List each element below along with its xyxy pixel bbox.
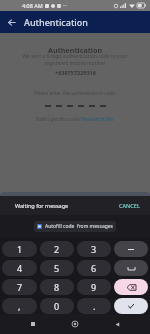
staticText: Please enter the authentication code. [34,90,117,96]
button[interactable]: 8 [40,279,74,295]
staticText: 4 [17,262,23,274]
staticText: 8 [54,281,60,293]
button[interactable]: Space [114,260,148,276]
staticText: 5 [54,262,60,274]
button[interactable]: Recents [26,317,40,331]
button[interactable]: 6 [77,260,111,276]
button[interactable]: 7 [2,279,37,295]
staticText: Authentication [48,45,103,55]
staticText: +639757229316 [55,69,96,76]
staticText: 6 [91,262,97,274]
button[interactable]: 1 [2,241,37,257]
staticText: ··· [63,2,68,9]
staticText: We sent a 6-digit authentication code to… [22,53,128,67]
staticText: Authentication [24,16,88,28]
button[interactable]: 0 [40,298,74,314]
button[interactable]: 9 [77,279,111,295]
staticText: 1 [17,243,23,255]
button[interactable]: Resend in 59s [82,116,114,122]
staticText: 0 [54,300,60,312]
button[interactable]: . [77,298,111,314]
staticText: , [18,300,21,312]
button[interactable]: 5 [40,260,74,276]
button[interactable]: , [2,298,37,314]
staticText: Resend in 59s [82,116,114,122]
staticText: Waiting for message [15,202,69,209]
button[interactable]: 3 [77,241,111,257]
button[interactable]: CANCEL [119,202,140,209]
button[interactable]: Back [110,317,124,331]
staticText: 2 [54,243,60,255]
staticText: . [93,300,96,312]
button[interactable]: Backspace [114,279,148,295]
staticText: Autofill code from messages [45,223,113,230]
staticText: CANCEL [119,202,140,209]
staticText: 3 [91,243,97,255]
button[interactable]: Back [0,11,22,33]
button[interactable]: Home [68,317,82,331]
staticText: Didn't get this code? [36,116,82,122]
button[interactable]: 4 [2,260,37,276]
staticText: 4:08 AM [22,2,43,9]
staticText: 7 [17,281,23,293]
button[interactable]: Enter [114,298,148,314]
button[interactable]: Dash [114,241,148,257]
button[interactable]: Autofill code from messages [34,221,116,232]
staticText: 9 [91,281,97,293]
button[interactable]: 2 [40,241,74,257]
